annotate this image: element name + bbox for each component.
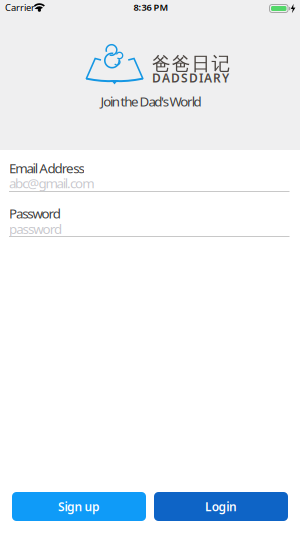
staticText: abc@gmail.com <box>9 174 94 192</box>
staticText: Login <box>205 498 237 514</box>
staticText: 8:36 PM <box>133 1 168 13</box>
staticText: password <box>9 220 62 238</box>
button[interactable]: Email Address <box>9 174 289 192</box>
staticText: DADSDIARY <box>152 70 229 86</box>
staticText: Password <box>9 204 61 222</box>
button[interactable]: Login <box>154 492 288 521</box>
staticText: Carrier <box>5 1 35 13</box>
button[interactable]: Sign up <box>12 492 146 521</box>
staticText: 爸爸日记 <box>152 52 230 75</box>
button[interactable]: Password <box>9 220 289 237</box>
staticText: Email Address <box>9 159 84 177</box>
staticText: Join the Dad's World <box>100 92 202 110</box>
staticText: Sign up <box>58 498 100 514</box>
